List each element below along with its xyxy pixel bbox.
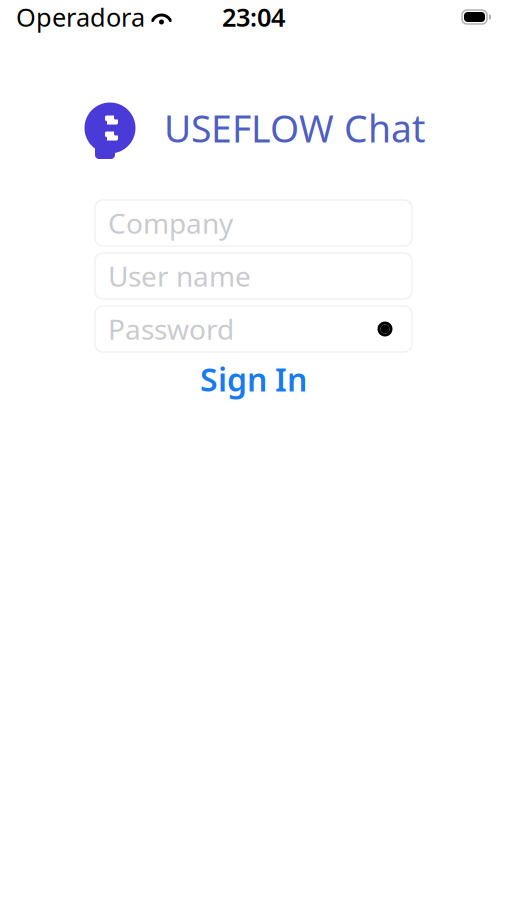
- staticText: Operadora: [16, 0, 145, 34]
- staticText: Password: [108, 310, 234, 348]
- button[interactable]: Sign In: [95, 362, 412, 396]
- staticText: USEFLOW Chat: [164, 103, 425, 153]
- button[interactable]: Company: [95, 200, 412, 246]
- staticText: User name: [108, 257, 251, 295]
- button[interactable]: Password: [95, 306, 412, 352]
- button[interactable]: User name: [95, 253, 412, 299]
- staticText: Company: [108, 204, 233, 242]
- staticText: 23:04: [222, 0, 285, 34]
- staticText: Sign In: [200, 358, 307, 400]
